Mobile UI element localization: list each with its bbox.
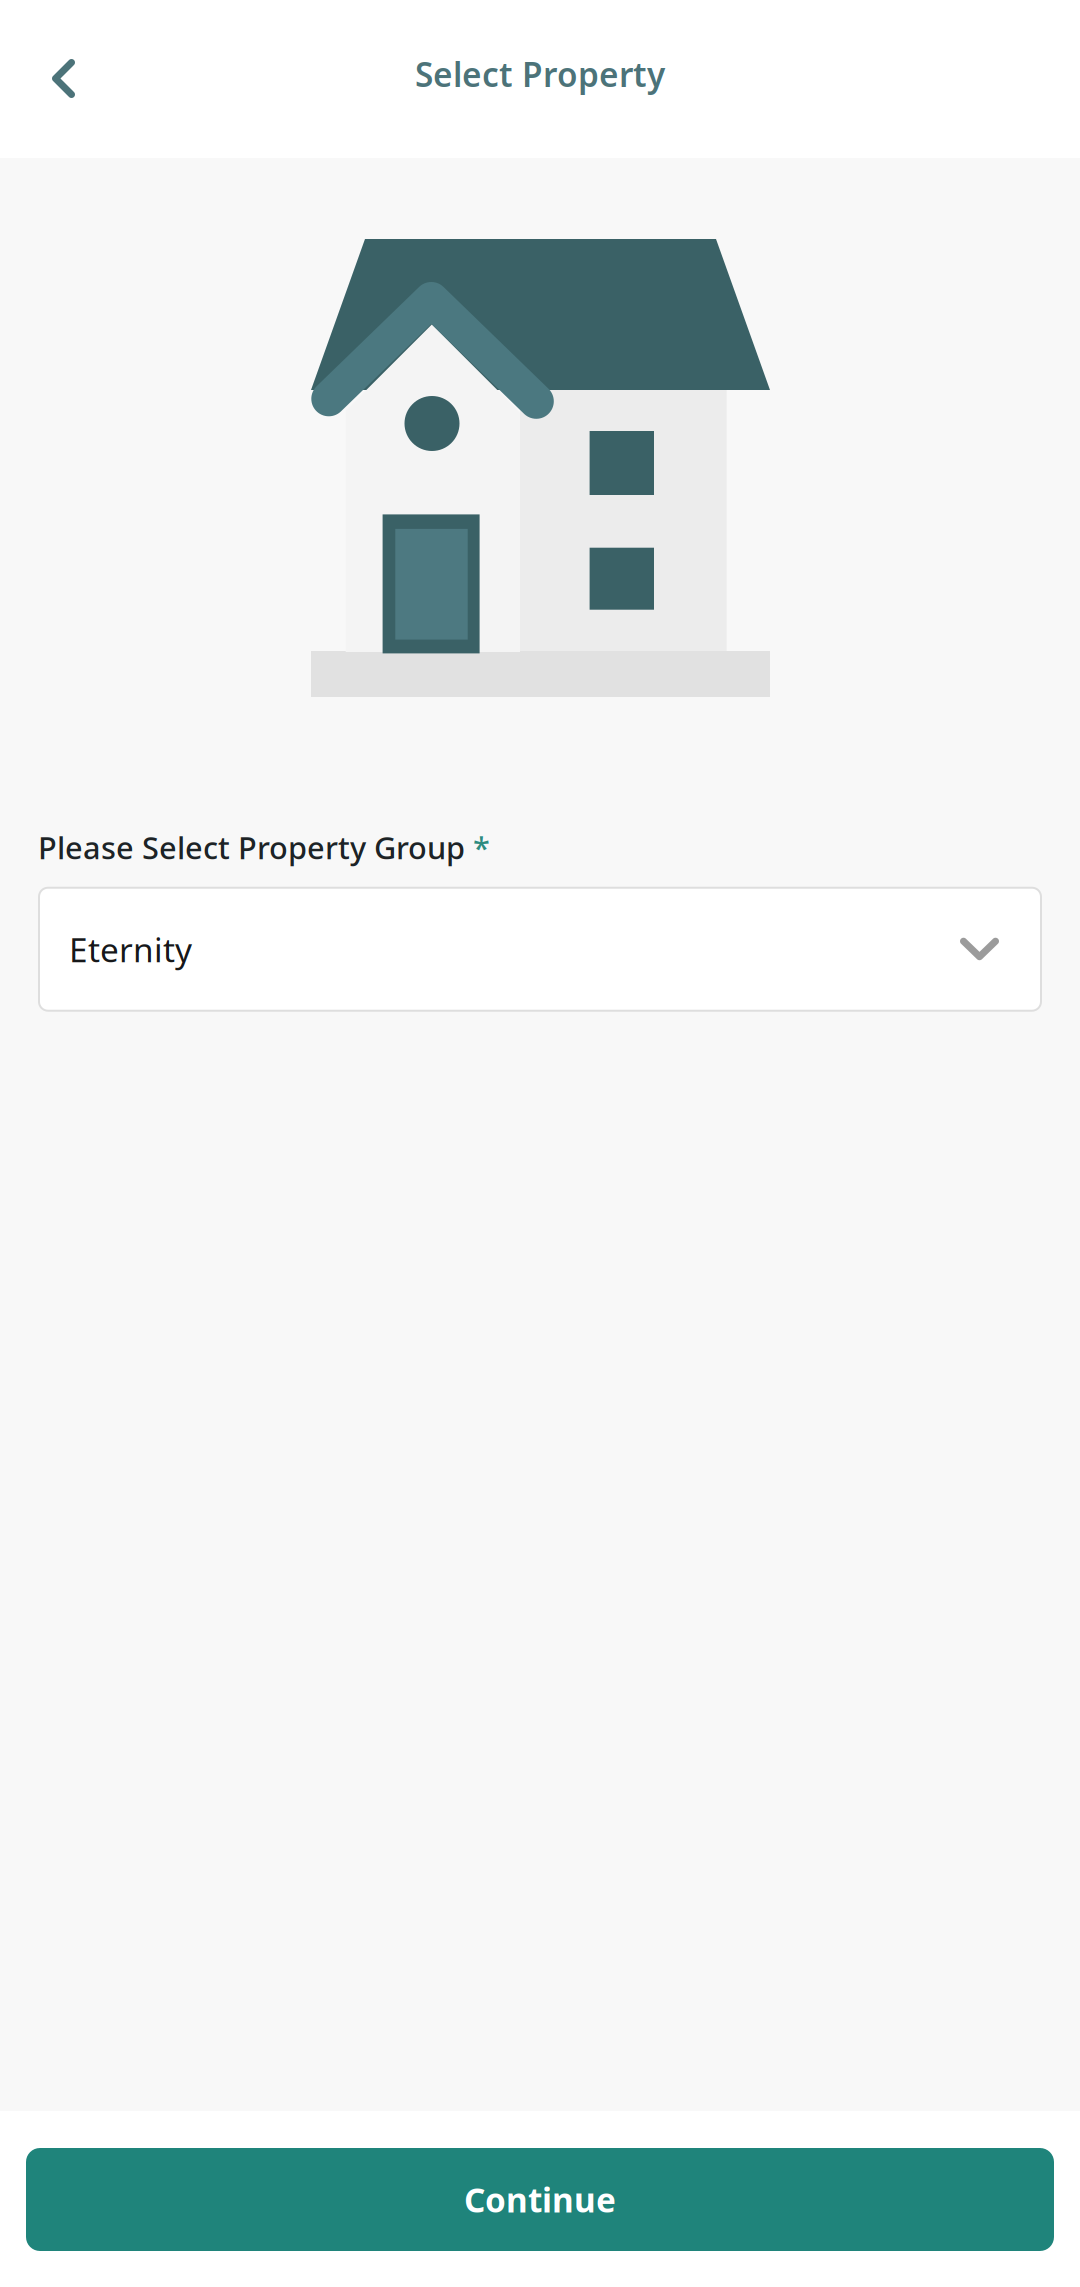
- button[interactable]: Continue: [26, 2148, 1054, 2251]
- staticText: Please Select Property Group: [38, 827, 473, 868]
- button[interactable]: Eternity: [39, 888, 1041, 1011]
- staticText: Select Property: [415, 52, 665, 96]
- staticText: Eternity: [69, 927, 192, 971]
- button[interactable]: Back: [0, 19, 115, 138]
- staticText: Continue: [464, 2177, 616, 2222]
- staticText: *: [473, 827, 490, 868]
